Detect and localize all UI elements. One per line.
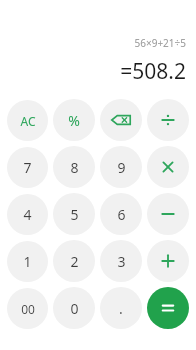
staticText: 1 <box>23 252 32 271</box>
button[interactable]: Equals <box>147 287 189 329</box>
staticText: 9 <box>117 158 126 177</box>
staticText: . <box>119 299 123 318</box>
button[interactable]: Divide <box>147 99 189 141</box>
staticText: 3 <box>117 252 126 271</box>
staticText: % <box>68 111 80 130</box>
button[interactable]: . <box>100 287 142 329</box>
button[interactable]: 1 <box>7 241 48 282</box>
button[interactable]: 7 <box>7 147 48 188</box>
button[interactable]: % <box>53 99 95 141</box>
staticText: 7 <box>23 158 32 177</box>
button[interactable]: 4 <box>7 194 48 235</box>
staticText: 2 <box>70 252 79 271</box>
button[interactable]: 3 <box>100 240 142 282</box>
staticText: 0 <box>70 299 79 318</box>
button[interactable]: Add <box>147 240 189 282</box>
button[interactable]: Subtract <box>147 193 189 235</box>
button[interactable]: 8 <box>53 146 95 188</box>
button[interactable]: 9 <box>100 146 142 188</box>
staticText: 4 <box>23 205 32 224</box>
staticText: 8 <box>70 158 79 177</box>
button[interactable]: 0 <box>53 287 95 329</box>
staticText: 56×9+21÷5 <box>134 36 186 50</box>
button[interactable]: 6 <box>100 193 142 235</box>
button[interactable]: Multiply <box>147 146 189 188</box>
button[interactable]: 00 <box>7 288 48 329</box>
button[interactable]: 2 <box>53 240 95 282</box>
staticText: 00 <box>21 301 35 317</box>
button[interactable]: Backspace <box>100 99 142 141</box>
staticText: AC <box>20 113 36 129</box>
button[interactable]: 5 <box>53 193 95 235</box>
staticText: 6 <box>117 205 126 224</box>
staticText: =508.2 <box>120 57 186 86</box>
staticText: 5 <box>70 205 79 224</box>
button[interactable]: AC <box>7 100 48 141</box>
